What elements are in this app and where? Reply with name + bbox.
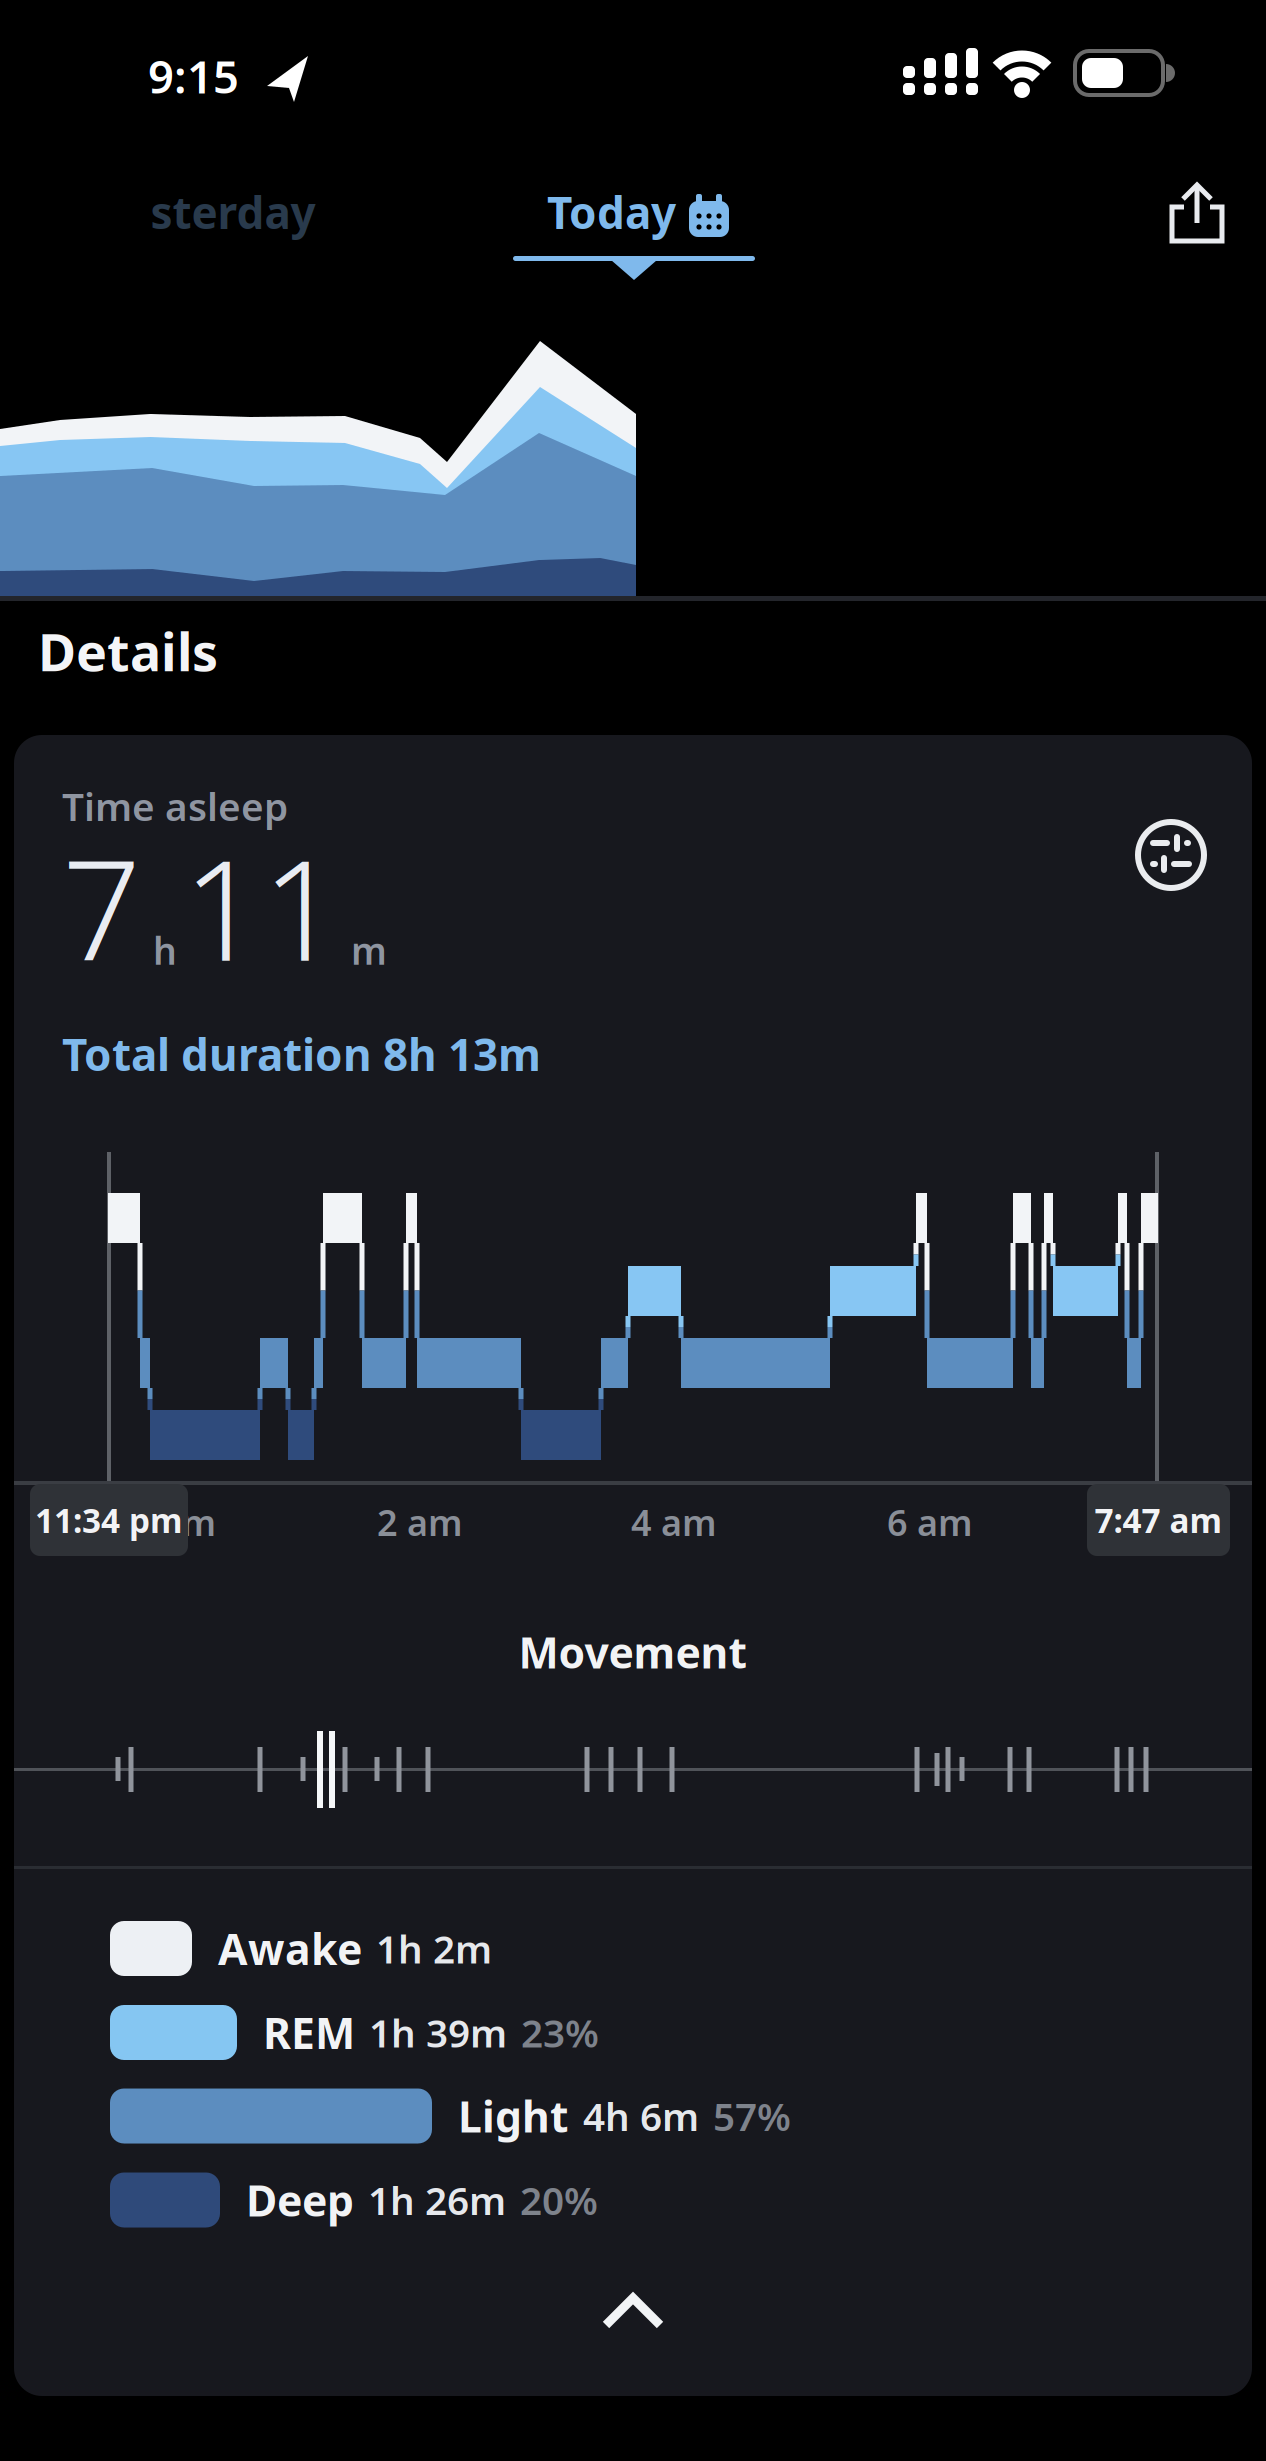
button[interactable] xyxy=(593,2284,673,2340)
staticText: Today xyxy=(547,183,676,241)
button[interactable] xyxy=(1134,818,1208,892)
staticText: Awake xyxy=(218,1920,362,1977)
staticText: 4 am xyxy=(631,1498,717,1546)
staticText: Light xyxy=(458,2088,569,2144)
staticText: REM xyxy=(263,2004,355,2061)
button[interactable]: 7:47 am xyxy=(1087,1484,1230,1556)
staticText: 7 xyxy=(62,815,141,999)
button[interactable]: Today xyxy=(511,172,761,252)
button[interactable] xyxy=(1165,181,1229,245)
staticText: 2 am xyxy=(377,1498,463,1546)
staticText: 4h 6m xyxy=(583,2090,699,2142)
staticText: 1h 26m xyxy=(368,2174,506,2226)
staticText: 6 am xyxy=(887,1498,973,1546)
staticText: Time asleep xyxy=(62,780,288,832)
staticText: 23% xyxy=(521,2007,599,2058)
staticText: Movement xyxy=(518,1624,747,1680)
button[interactable]: 11:34 pm xyxy=(30,1484,188,1556)
staticText: m xyxy=(351,925,387,975)
staticText: m xyxy=(181,1498,216,1546)
button[interactable]: sterday xyxy=(123,172,343,252)
staticText: Details xyxy=(38,616,218,686)
staticText: 20% xyxy=(520,2174,598,2226)
staticText: sterday xyxy=(150,183,315,241)
staticText: h xyxy=(153,925,177,975)
staticText: 7:47 am xyxy=(1094,1498,1222,1542)
staticText: 1h 2m xyxy=(376,1923,492,1974)
staticText: Deep xyxy=(246,2172,354,2228)
staticText: 57% xyxy=(713,2090,791,2142)
staticText: Total duration 8h 13m xyxy=(62,1025,541,1083)
staticText: 1h 39m xyxy=(369,2007,507,2058)
staticText: 11 xyxy=(183,815,341,999)
staticText: 11:34 pm xyxy=(35,1498,183,1542)
staticText: 9:15 xyxy=(148,46,239,106)
